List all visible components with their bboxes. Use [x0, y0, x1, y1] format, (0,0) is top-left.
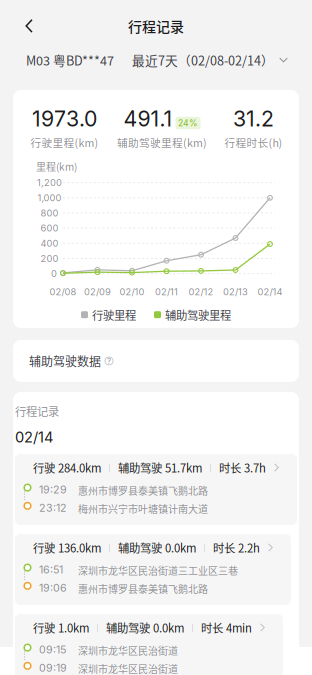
staticText: 02/09: [84, 286, 111, 297]
staticText: 行驶里程: [92, 306, 136, 323]
staticText: 1973.0: [32, 106, 97, 132]
button[interactable]: 行驶 284.0km: [15, 454, 297, 525]
staticText: 惠州市博罗县泰美镇飞鹅北路: [78, 483, 208, 498]
staticText: 02/13: [223, 286, 248, 297]
staticText: 梅州市兴宁市叶塘镇计南大道: [78, 501, 208, 516]
staticText: 200: [40, 253, 58, 264]
staticText: 800: [40, 207, 58, 219]
staticText: 600: [40, 222, 58, 234]
staticText: 400: [40, 238, 58, 249]
staticText: 行驶里程(km): [30, 135, 98, 150]
staticText: 辅助驾驶数据: [29, 352, 101, 370]
button[interactable]: 行驶 136.0km: [15, 534, 291, 605]
staticText: 24%: [178, 118, 198, 128]
staticText: M03 粤BD***47: [26, 51, 114, 69]
staticText: 1,000: [37, 192, 61, 203]
staticText: 02/12: [188, 286, 213, 297]
staticText: 时长 3.7h: [219, 459, 266, 476]
staticText: 辅助驾驶里程: [165, 306, 231, 323]
staticText: 最近7天（02/08-02/14）: [132, 51, 274, 69]
staticText: 辅助驾驶 0.0km: [106, 619, 184, 636]
staticText: 行程记录: [128, 16, 184, 36]
button[interactable]: 返回: [14, 11, 44, 41]
staticText: 行程时长(h): [224, 135, 282, 150]
staticText: 19:06: [39, 581, 67, 594]
staticText: 02/14: [257, 286, 282, 297]
staticText: 深圳市龙华区民治街道三工业区三巷: [78, 563, 238, 578]
button[interactable]: 最近7天（02/08-02/14）: [132, 47, 288, 73]
staticText: 惠州市博罗县泰美镇飞鹅北路: [78, 581, 208, 596]
staticText: 行程记录: [15, 403, 59, 419]
staticText: 时长 2.2h: [213, 539, 260, 556]
staticText: 09:15: [39, 643, 66, 656]
staticText: 里程(km): [36, 159, 77, 174]
staticText: 深圳市龙华区民治街道: [78, 643, 178, 658]
staticText: 深圳市龙华区民治街道: [78, 661, 178, 675]
staticText: 02/14: [15, 428, 53, 446]
staticText: 行驶 284.0km: [33, 459, 101, 476]
staticText: 时长 4min: [201, 619, 252, 636]
staticText: 02/08: [49, 286, 76, 297]
staticText: 16:51: [39, 563, 63, 576]
staticText: 1,200: [37, 177, 62, 188]
staticText: 辅助驾驶里程(km): [117, 135, 207, 150]
staticText: 02/10: [119, 286, 144, 297]
button[interactable]: M03 粤BD***47: [26, 47, 114, 73]
staticText: 辅助驾驶 0.0km: [118, 539, 196, 556]
button[interactable]: 行驶 1.0km: [15, 614, 283, 675]
staticText: 19:29: [39, 483, 67, 496]
staticText: 09:19: [39, 661, 67, 674]
staticText: 行驶 1.0km: [33, 619, 89, 636]
staticText: ?: [107, 356, 111, 366]
staticText: 辅助驾驶 51.7km: [118, 459, 202, 476]
button[interactable]: 辅助驾驶数据: [13, 340, 299, 382]
staticText: 02/11: [155, 286, 178, 297]
staticText: 0: [51, 268, 57, 279]
staticText: 491.1: [123, 106, 172, 132]
staticText: 31.2: [233, 106, 274, 132]
staticText: 23:12: [39, 501, 67, 514]
staticText: 行驶 136.0km: [33, 539, 101, 556]
